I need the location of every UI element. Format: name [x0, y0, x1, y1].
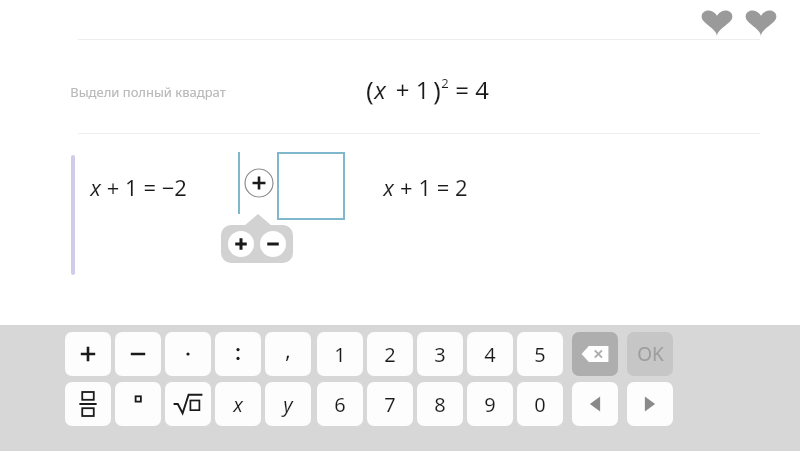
button[interactable]: Divide	[215, 332, 261, 376]
button[interactable]: Move left	[572, 382, 618, 426]
button[interactable]: Move right	[627, 382, 673, 426]
staticText: 2	[441, 74, 449, 92]
button[interactable]: 3	[417, 332, 463, 376]
staticText: OK	[637, 341, 664, 367]
button[interactable]: 7	[367, 382, 413, 426]
button[interactable]: Plus	[65, 332, 111, 376]
staticText: 4	[484, 341, 496, 368]
staticText: 1	[334, 341, 346, 368]
button[interactable]: Life 2	[744, 8, 778, 38]
staticText: = 4	[449, 73, 489, 106]
staticText: + 1 = −2	[101, 172, 187, 202]
button[interactable]: Plus operator	[244, 168, 274, 198]
button[interactable]: Comma	[265, 332, 311, 376]
button[interactable]: Fraction	[65, 382, 111, 426]
button[interactable]: 8	[417, 382, 463, 426]
button[interactable]: Backspace	[572, 332, 618, 376]
staticText: + 1 = 2	[394, 172, 468, 202]
button[interactable]: Multiply	[165, 332, 211, 376]
button[interactable]: 4	[467, 332, 513, 376]
staticText: 5	[534, 341, 546, 368]
staticText: 7	[384, 391, 396, 418]
staticText: x	[374, 73, 386, 106]
staticText: (	[366, 72, 374, 107]
button[interactable]: Minus	[115, 332, 161, 376]
staticText: 9	[484, 391, 496, 418]
button[interactable]: 9	[467, 382, 513, 426]
button[interactable]: Square root	[165, 382, 211, 426]
staticText: 6	[334, 391, 346, 418]
button[interactable]: OK	[627, 332, 673, 376]
staticText: y	[283, 391, 293, 418]
staticText: 2	[384, 341, 396, 368]
staticText: Выдели полный квадрат	[70, 83, 226, 101]
button[interactable]: 1	[317, 332, 363, 376]
staticText: x	[383, 172, 394, 202]
staticText: x	[233, 391, 243, 418]
button[interactable]: Life 1	[700, 8, 734, 38]
button[interactable]: 5	[517, 332, 563, 376]
staticText: 3	[434, 341, 446, 368]
staticText: x	[90, 172, 101, 202]
button[interactable]: Degree	[115, 382, 161, 426]
button[interactable]: y	[265, 382, 311, 426]
button[interactable]: x	[215, 382, 261, 426]
button[interactable]: Answer input	[277, 152, 345, 220]
button[interactable]: 6	[317, 382, 363, 426]
staticText: )	[433, 72, 441, 107]
button[interactable]: 2	[367, 332, 413, 376]
staticText: 8	[434, 391, 446, 418]
button[interactable]: 0	[517, 382, 563, 426]
staticText: ,	[285, 334, 291, 364]
staticText: + 1	[386, 73, 433, 106]
button[interactable]: Add minus	[260, 231, 286, 257]
button[interactable]: Add plus	[228, 231, 254, 257]
staticText: 0	[534, 391, 546, 418]
